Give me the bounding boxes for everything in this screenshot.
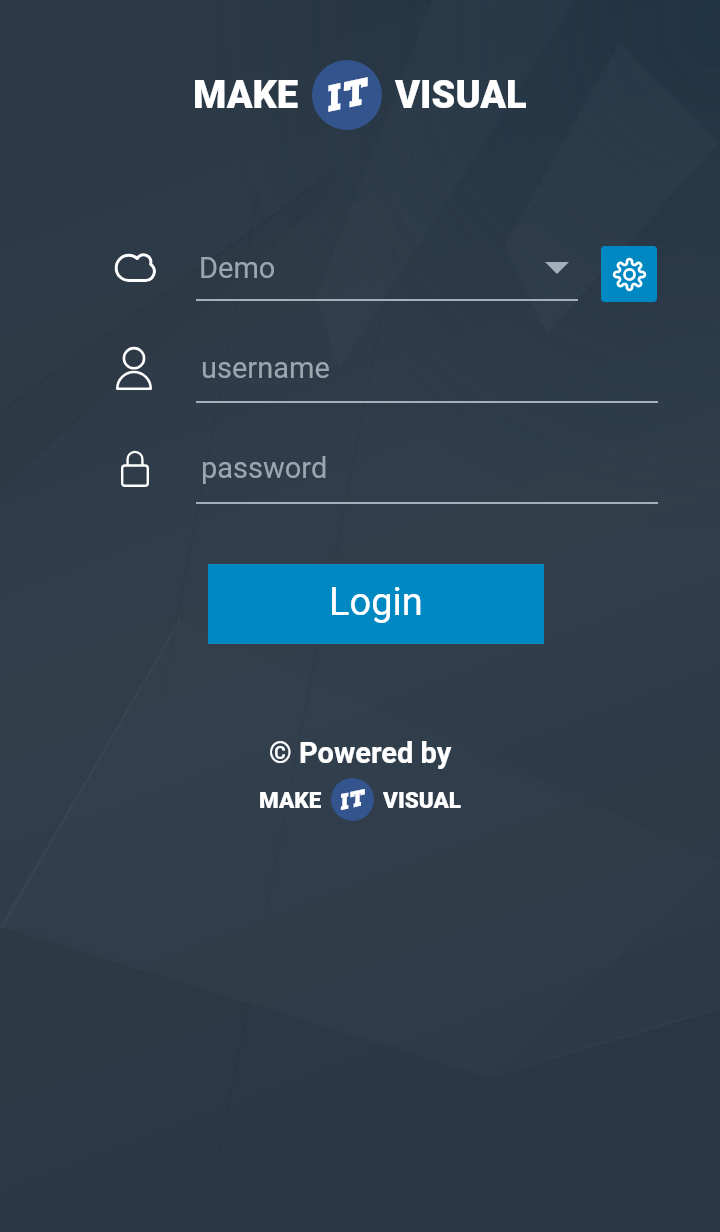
staticText: Demo: [199, 251, 276, 285]
staticText: MAKE: [259, 787, 322, 813]
staticText: IT: [337, 785, 368, 815]
staticText: password: [201, 451, 328, 485]
staticText: © Powered by: [269, 736, 452, 770]
staticText: username: [201, 351, 330, 385]
staticText: VISUAL: [383, 787, 461, 813]
button[interactable]: username: [196, 344, 658, 404]
staticText: IT: [321, 71, 373, 119]
button[interactable]: Login: [208, 564, 544, 644]
staticText: Login: [329, 580, 423, 625]
button[interactable]: Demo: [196, 244, 578, 300]
button[interactable]: password: [196, 444, 658, 504]
staticText: VISUAL: [395, 73, 527, 118]
staticText: MAKE: [193, 73, 299, 118]
button[interactable]: Settings: [601, 246, 657, 302]
